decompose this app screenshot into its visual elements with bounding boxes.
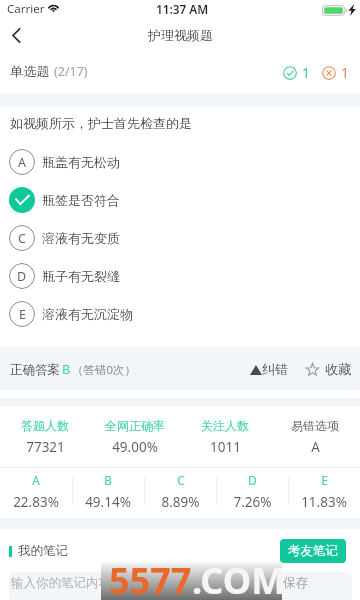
button[interactable]: Back: [0, 20, 32, 50]
staticText: 77321: [26, 438, 65, 456]
staticText: 11:37 AM: [156, 1, 209, 17]
staticText: 答题人数: [21, 418, 69, 433]
staticText: B: [104, 472, 112, 488]
staticText: E: [321, 472, 328, 488]
button[interactable]: D: [0, 257, 360, 295]
staticText: 8.89%: [161, 493, 200, 511]
staticText: D: [17, 268, 27, 285]
staticText: 1: [341, 63, 350, 82]
staticText: 单选题: [10, 63, 50, 80]
staticText: (2/17): [54, 63, 88, 80]
staticText: 1011: [210, 438, 241, 456]
button[interactable]: [9, 572, 352, 600]
staticText: 关注人数: [201, 418, 249, 433]
button[interactable]: 瓶签是否符合: [0, 181, 360, 219]
staticText: C: [177, 472, 185, 488]
staticText: E: [19, 306, 26, 323]
staticText: 我的笔记: [18, 543, 68, 559]
button[interactable]: A: [0, 143, 360, 181]
staticText: A: [32, 472, 40, 488]
staticText: 瓶盖有无松动: [42, 154, 120, 170]
staticText: Carrier: [7, 1, 45, 17]
button[interactable]: E: [0, 295, 360, 333]
staticText: 22.83%: [13, 493, 59, 511]
staticText: A: [311, 438, 320, 456]
staticText: （答错0次）: [72, 362, 137, 378]
staticText: A: [18, 154, 26, 171]
button[interactable]: 收藏: [305, 361, 353, 378]
staticText: .COM: [192, 556, 286, 600]
button[interactable]: 纠错: [249, 361, 290, 378]
staticText: 全网正确率: [105, 418, 165, 433]
staticText: 收藏: [325, 361, 352, 378]
staticText: C: [18, 230, 26, 247]
staticText: 49.00%: [112, 438, 158, 456]
staticText: 纠错: [262, 361, 289, 378]
staticText: 护理视频题: [148, 27, 213, 43]
staticText: B: [62, 361, 71, 378]
staticText: 保存: [283, 575, 308, 591]
staticText: 溶液有无沉淀物: [42, 306, 133, 322]
button[interactable]: C: [0, 219, 360, 257]
staticText: 溶液有无变质: [42, 230, 120, 246]
staticText: 11.83%: [301, 493, 347, 511]
staticText: 5577: [109, 556, 192, 600]
staticText: 输入你的笔记内容: [11, 575, 111, 591]
staticText: 瓶签是否符合: [42, 192, 120, 208]
staticText: 7.26%: [233, 493, 272, 511]
staticText: D: [248, 472, 257, 488]
staticText: 瓶子有无裂缝: [42, 268, 120, 284]
staticText: 49.14%: [85, 493, 131, 511]
button[interactable]: 考友笔记: [280, 539, 346, 563]
staticText: 正确答案: [10, 362, 60, 378]
staticText: 考友笔记: [288, 543, 338, 559]
staticText: 1: [302, 63, 311, 82]
staticText: 如视频所示，护士首先检查的是: [10, 115, 192, 131]
staticText: 易错选项: [291, 418, 339, 433]
